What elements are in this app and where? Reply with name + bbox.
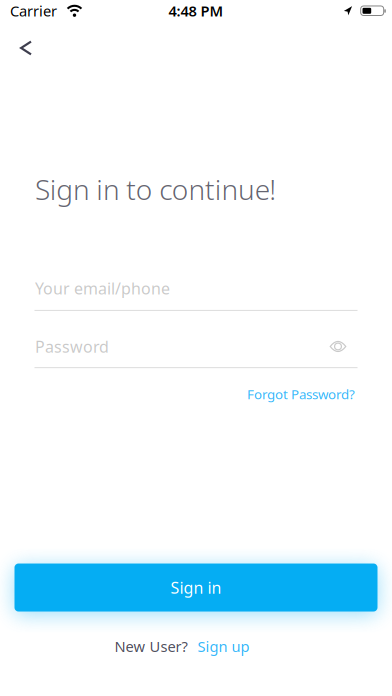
staticText: 4:48 PM — [168, 1, 223, 20]
staticText: Carrier — [10, 1, 57, 20]
staticText: Password — [35, 336, 109, 357]
button[interactable]: Back — [0, 20, 32, 55]
button[interactable]: Sign in — [14, 563, 377, 611]
button[interactable]: Show password — [329, 341, 346, 352]
button[interactable]: Forgot Password? — [247, 385, 355, 403]
staticText: Forgot Password? — [247, 385, 355, 403]
staticText: Sign in — [170, 577, 221, 598]
staticText: Sign in to continue! — [35, 170, 276, 208]
staticText: Sign up — [197, 636, 249, 656]
staticText: Your email/phone — [35, 278, 170, 299]
staticText: New User? — [114, 636, 187, 656]
button[interactable]: Sign up — [197, 636, 249, 656]
